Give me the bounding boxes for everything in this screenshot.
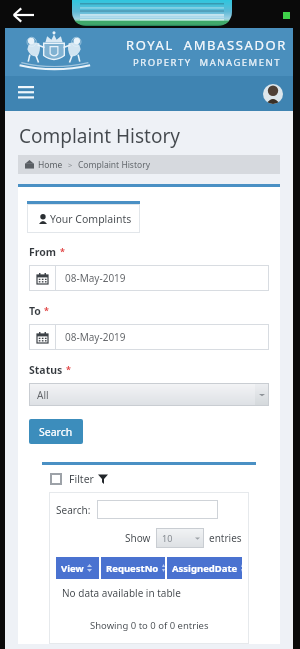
button[interactable]: Your Complaints xyxy=(27,201,140,233)
button[interactable]: RequestNo xyxy=(101,557,165,579)
button[interactable]: 08-May-2019 xyxy=(29,265,269,291)
staticText: Your Complaints xyxy=(50,212,132,226)
button[interactable]: Profile xyxy=(263,84,283,104)
button[interactable]: 08-May-2019 xyxy=(29,324,269,350)
staticText: entries xyxy=(209,531,242,545)
staticText: Search: xyxy=(56,503,91,517)
button[interactable]: 10 xyxy=(156,528,204,548)
staticText: All xyxy=(37,388,49,402)
staticText: View xyxy=(61,562,84,575)
staticText: Search xyxy=(39,425,73,439)
staticText: Filter xyxy=(69,472,94,486)
staticText: > xyxy=(68,160,73,170)
staticText: * xyxy=(60,245,65,257)
staticText: 08-May-2019 xyxy=(65,330,126,344)
staticText: * xyxy=(44,304,49,316)
staticText: AssignedDate xyxy=(172,562,238,575)
staticText: 10 xyxy=(162,532,173,544)
button[interactable] xyxy=(97,500,218,519)
staticText: Home xyxy=(38,159,63,171)
button[interactable]: All xyxy=(29,383,269,406)
button[interactable]: Search xyxy=(29,419,83,444)
staticText: 08-May-2019 xyxy=(65,271,126,285)
staticText: To xyxy=(29,304,41,318)
staticText: Status xyxy=(29,363,63,377)
button[interactable]: Back xyxy=(8,0,38,30)
button[interactable]: Menu xyxy=(13,81,39,107)
button[interactable]: View xyxy=(56,557,99,579)
staticText: Showing 0 to 0 of 0 entries xyxy=(90,619,209,632)
staticText: RequestNo xyxy=(106,562,159,575)
staticText: Complaint History xyxy=(78,159,150,171)
button[interactable]: Filter xyxy=(50,472,256,486)
button[interactable]: AssignedDate xyxy=(167,557,242,579)
staticText: Show xyxy=(125,531,151,545)
staticText: Complaint History xyxy=(19,123,180,149)
staticText: No data available in table xyxy=(62,586,181,600)
staticText: ROYAL AMBASSADOR xyxy=(126,36,287,54)
staticText: * xyxy=(66,363,71,375)
staticText: From xyxy=(29,245,57,259)
staticText: PROPERTY MANAGEMENT xyxy=(133,56,281,69)
